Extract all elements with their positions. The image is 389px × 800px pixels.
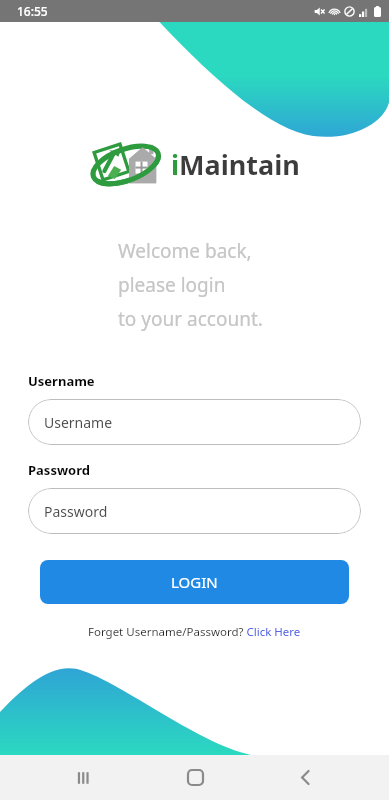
staticText: iMaintain — [171, 146, 300, 183]
staticText: Welcome back, — [118, 238, 252, 264]
button[interactable]: Forget Username/Password? Click Here — [82, 620, 307, 644]
staticText: 16:55 — [17, 3, 48, 19]
button[interactable]: LOGIN — [40, 560, 349, 604]
button[interactable]: Password — [28, 488, 361, 534]
other: iMaintain logo — [89, 134, 169, 194]
staticText: Username — [44, 413, 113, 432]
button[interactable]: Username — [28, 399, 361, 445]
staticText: Forget Username/Password? Click Here — [88, 624, 301, 640]
staticText: to your account. — [118, 306, 263, 332]
staticText: Password — [28, 461, 90, 479]
button[interactable]: Home — [168, 755, 222, 800]
button[interactable]: Back — [278, 755, 332, 800]
button[interactable]: Recent apps — [57, 755, 111, 800]
staticText: please login — [118, 272, 226, 298]
staticText: Password — [44, 502, 108, 521]
staticText: LOGIN — [171, 572, 218, 592]
staticText: Username — [28, 372, 95, 390]
